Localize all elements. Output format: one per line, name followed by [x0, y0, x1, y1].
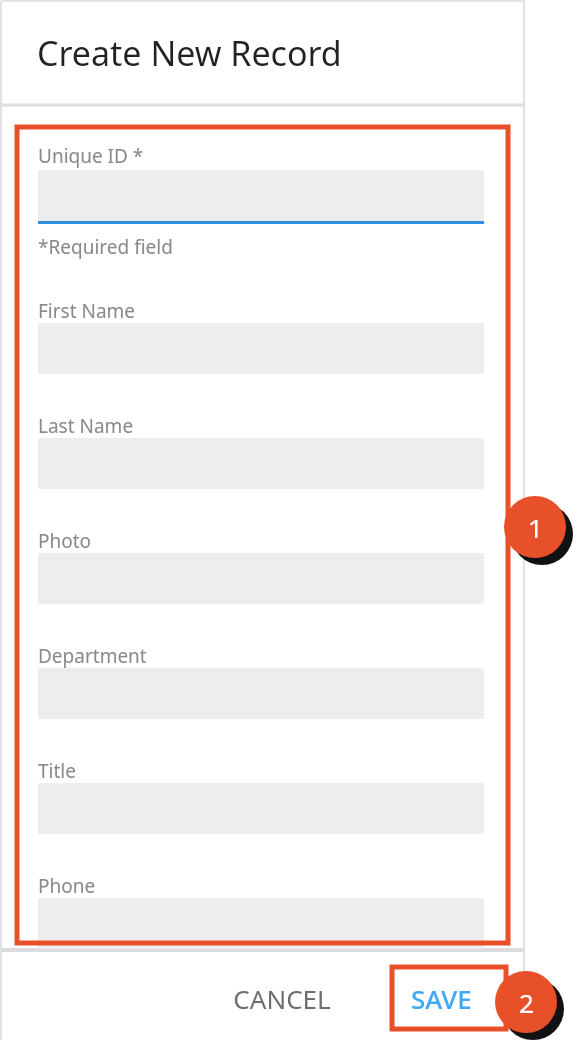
staticText: Last Name [38, 413, 134, 439]
staticText: SAVE [411, 981, 472, 1016]
staticText: Phone [38, 873, 96, 899]
staticText: First Name [38, 298, 136, 324]
other: Step 1 [494, 486, 576, 568]
staticText: 2 [519, 985, 534, 1020]
staticText: CANCEL [233, 981, 331, 1016]
button[interactable]: SAVE [392, 967, 506, 1029]
staticText: Unique ID * [38, 143, 144, 169]
staticText: Title [38, 758, 76, 784]
staticText: *Required field [38, 234, 173, 260]
staticText: Create New Record [37, 30, 342, 76]
button[interactable] [38, 898, 484, 949]
button[interactable]: CANCEL [222, 972, 342, 1024]
staticText: Department [38, 643, 147, 669]
other: Step 2 [485, 961, 567, 1040]
staticText: 1 [528, 510, 543, 545]
staticText: Photo [38, 528, 92, 554]
